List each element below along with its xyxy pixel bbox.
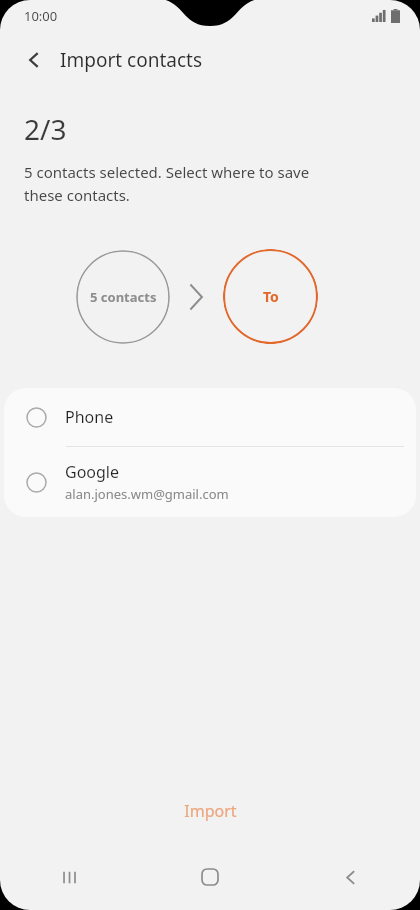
button[interactable]: Import bbox=[0, 788, 420, 834]
staticText: 5 contacts bbox=[90, 288, 157, 306]
staticText: alan.jones.wm@gmail.com bbox=[65, 485, 229, 503]
staticText: Phone bbox=[65, 406, 114, 428]
staticText: Import bbox=[184, 800, 237, 822]
button[interactable]: Home bbox=[140, 856, 280, 898]
button[interactable]: Back bbox=[12, 38, 56, 82]
staticText: Import contacts bbox=[60, 47, 202, 73]
button[interactable]: To bbox=[223, 249, 318, 344]
staticText: Google bbox=[65, 461, 120, 483]
staticText: 10:00 bbox=[24, 7, 58, 25]
staticText: 5 contacts selected. Select where to sav… bbox=[24, 162, 310, 205]
button[interactable]: Back bbox=[280, 856, 420, 898]
staticText: 2/3 bbox=[24, 110, 67, 148]
button[interactable]: Google bbox=[4, 447, 416, 517]
button[interactable]: 5 contacts bbox=[76, 250, 170, 344]
button[interactable]: Recent apps bbox=[0, 856, 140, 898]
button[interactable]: Phone bbox=[4, 388, 416, 446]
staticText: To bbox=[263, 287, 279, 306]
